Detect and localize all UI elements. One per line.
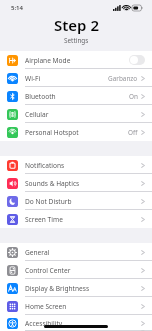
staticText: Step 2 (54, 15, 99, 35)
staticText: 5:14 (11, 4, 23, 12)
staticText: Off (128, 128, 138, 137)
staticText: Sounds & Haptics (25, 179, 141, 188)
button[interactable]: Control Center (0, 261, 152, 279)
button[interactable]: Notifications (0, 156, 152, 174)
button[interactable]: Airplane Mode (0, 51, 152, 69)
button[interactable]: Display & Brightness (0, 279, 152, 297)
staticText: Home Screen (25, 302, 141, 311)
staticText: Settings (64, 36, 89, 45)
button[interactable]: Airplane Mode toggle, off (129, 55, 145, 65)
staticText: On (129, 92, 138, 101)
button[interactable]: Bluetooth (0, 87, 152, 105)
staticText: Personal Hotspot (25, 128, 128, 137)
staticText: Garbanzo (108, 74, 138, 83)
staticText: Bluetooth (25, 92, 129, 101)
staticText: Wi-Fi (25, 74, 108, 83)
staticText: Screen Time (25, 215, 141, 224)
button[interactable]: Accessibility (0, 315, 152, 331)
button[interactable]: General (0, 243, 152, 261)
staticText: Cellular (25, 110, 141, 119)
staticText: General (25, 248, 141, 257)
staticText: Notifications (25, 161, 141, 170)
staticText: Accessibility (25, 319, 141, 328)
button[interactable]: Wi-Fi (0, 69, 152, 87)
button[interactable]: Screen Time (0, 210, 152, 228)
staticText: Display & Brightness (25, 284, 141, 293)
staticText: Do Not Disturb (25, 197, 141, 206)
button[interactable]: Do Not Disturb (0, 192, 152, 210)
staticText: Control Center (25, 266, 141, 275)
button[interactable]: Personal Hotspot (0, 123, 152, 141)
button[interactable]: Home Screen (0, 297, 152, 315)
button[interactable]: Sounds & Haptics (0, 174, 152, 192)
button[interactable]: Cellular (0, 105, 152, 123)
staticText: Airplane Mode (25, 56, 129, 65)
